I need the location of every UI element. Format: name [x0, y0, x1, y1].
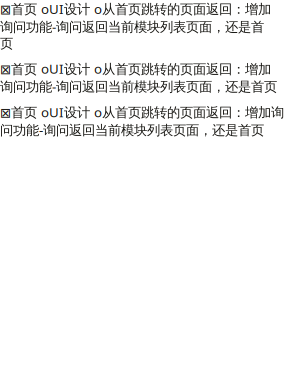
staticText: ⊠首页 oUI设计 o从首页跳转的页面返回：增加询问功能-询问返回当前模块列表页… [0, 103, 284, 139]
staticText: ⊠首页 oUI设计 o从首页跳转的页面返回：增加询问功能-询问返回当前模块列表页… [0, 60, 277, 95]
staticText: ⊠首页 oUI设计 o从首页跳转的页面返回：增加询问功能-询问返回当前模块列表页… [0, 0, 271, 52]
